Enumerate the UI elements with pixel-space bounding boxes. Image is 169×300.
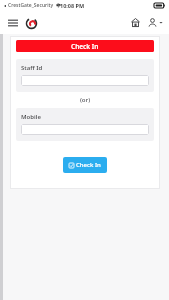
staticText: Check In: [76, 161, 101, 169]
button[interactable]: CrestGate logo: [23, 15, 39, 31]
button[interactable]: Account: [147, 15, 164, 30]
staticText: 10:08 PM: [60, 2, 85, 9]
staticText: (or): [16, 96, 154, 104]
staticText: Check In: [71, 42, 99, 51]
button[interactable]: Home: [128, 15, 143, 30]
button[interactable]: Mobile input: [21, 124, 149, 135]
button[interactable]: Check In: [63, 157, 107, 173]
button[interactable]: Check In: [16, 40, 154, 52]
staticText: Staff Id: [21, 64, 43, 72]
staticText: Mobile: [21, 113, 41, 121]
button[interactable]: Staff Id input: [21, 75, 149, 86]
staticText: CrestGate_Security: [8, 2, 54, 9]
button[interactable]: Menu: [6, 16, 20, 30]
